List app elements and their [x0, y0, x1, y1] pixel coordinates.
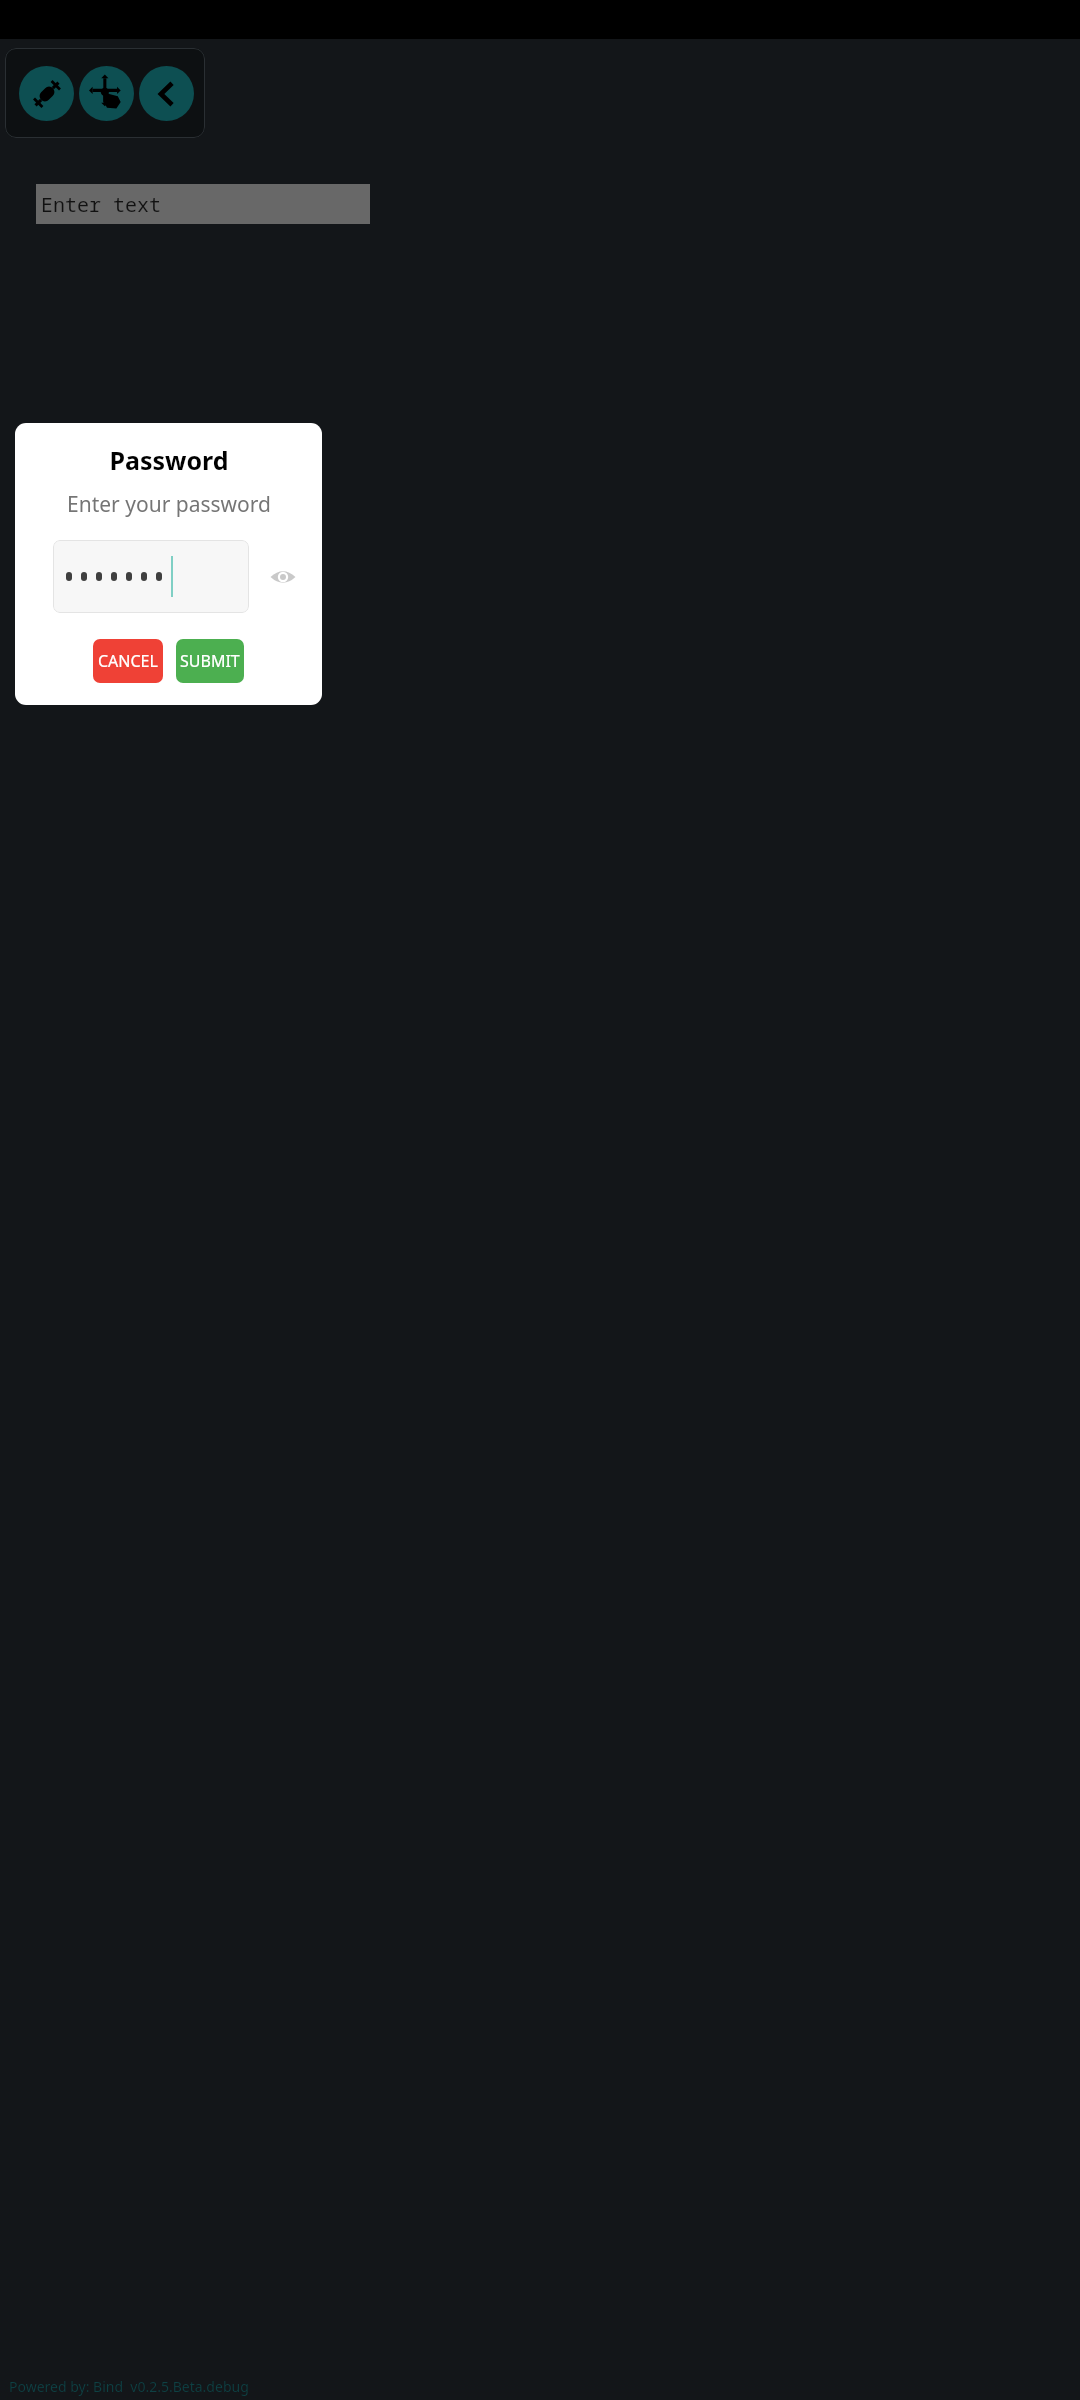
button[interactable]: SUBMIT [176, 639, 244, 683]
staticText: Enter text [41, 191, 161, 218]
button[interactable]: Enter text [36, 184, 370, 224]
staticText: SUBMIT [180, 650, 240, 672]
button[interactable]: CANCEL [93, 639, 163, 683]
button[interactable]: Show password [263, 557, 303, 597]
button[interactable] [53, 540, 249, 613]
staticText: CANCEL [98, 650, 158, 672]
staticText: Password [109, 443, 229, 477]
staticText: Powered by: Bind v0.2.5.Beta.debug [9, 2377, 249, 2396]
button[interactable]: Pan and drag [79, 66, 134, 121]
button[interactable]: Back [139, 66, 194, 121]
button[interactable]: Connection [19, 66, 74, 121]
staticText: Enter your password [67, 490, 271, 519]
